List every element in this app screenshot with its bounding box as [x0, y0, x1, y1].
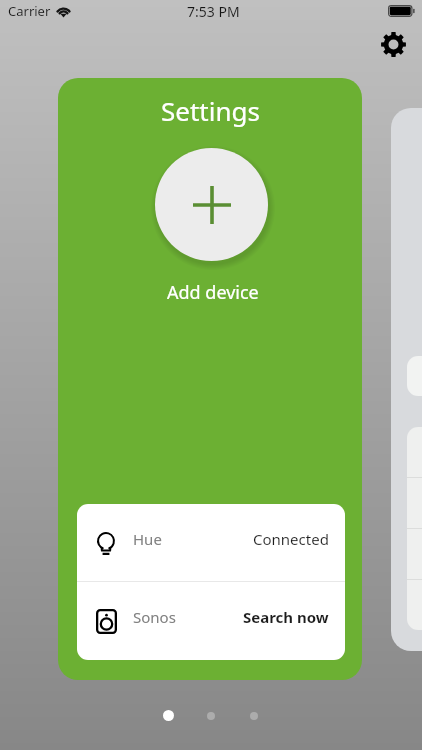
staticText: Connected: [253, 529, 329, 549]
staticText: Hue: [133, 529, 162, 549]
staticText: 7:53 PM: [187, 2, 240, 21]
button[interactable]: Settings: [375, 26, 412, 63]
staticText: Add device: [167, 280, 259, 305]
button[interactable]: Hue: [77, 504, 345, 581]
staticText: Settings: [161, 93, 260, 128]
button[interactable]: Add device: [155, 148, 268, 261]
staticText: Sonos: [133, 607, 176, 627]
staticText: Carrier: [8, 2, 51, 20]
staticText: Search now: [243, 607, 329, 627]
button[interactable]: Sonos: [77, 582, 345, 659]
